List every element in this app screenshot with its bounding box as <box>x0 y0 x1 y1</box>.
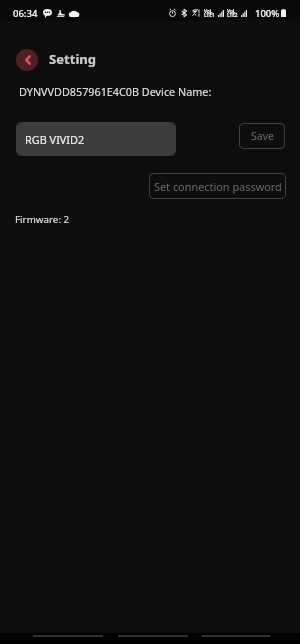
staticText: Save <box>251 129 274 143</box>
staticText: 06:34 <box>13 7 38 20</box>
staticText: Setting <box>49 50 97 68</box>
button[interactable]: Save <box>239 123 285 149</box>
staticText: RGB VIVID2 <box>25 132 85 147</box>
button[interactable]: RGB VIVID2 <box>16 122 176 156</box>
staticText: VoL <box>204 8 213 14</box>
staticText: 100% <box>255 7 280 20</box>
staticText: DYNVVDD857961E4C0B Device Name: <box>19 84 212 99</box>
staticText: Set connection password <box>154 179 282 194</box>
staticText: VoL <box>227 8 236 14</box>
button[interactable]: Set connection password <box>149 173 286 199</box>
staticText: LTE2 <box>227 12 238 18</box>
staticText: Firmware: 2 <box>15 213 70 226</box>
staticText: LTE1 <box>204 12 215 18</box>
button[interactable]: Back <box>16 49 38 71</box>
